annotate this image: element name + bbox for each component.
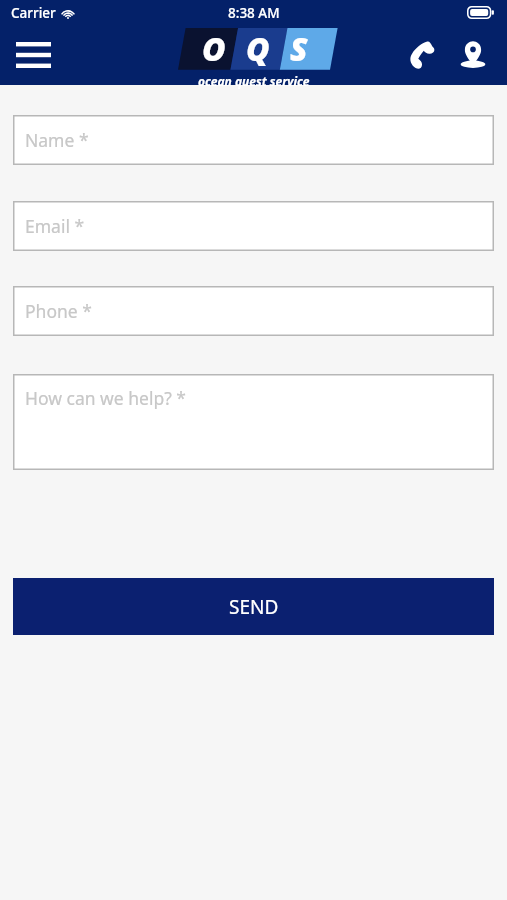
staticText: Carrier <box>11 4 56 22</box>
staticText: Q <box>246 27 270 71</box>
button[interactable]: Open navigation menu <box>6 30 60 80</box>
staticText: O <box>202 27 226 71</box>
button[interactable]: Phone * <box>13 286 494 336</box>
staticText: ocean quest service <box>198 73 310 89</box>
staticText: How can we help? * <box>25 386 187 410</box>
button[interactable]: Find location <box>448 30 498 80</box>
staticText: Email * <box>25 214 85 238</box>
staticText: Phone * <box>25 299 92 323</box>
button[interactable]: Call <box>398 30 448 80</box>
staticText: SEND <box>229 594 279 620</box>
button[interactable]: SEND <box>13 578 494 635</box>
button[interactable]: Name * <box>13 115 494 165</box>
staticText: S <box>290 27 308 71</box>
button[interactable]: Email * <box>13 201 494 251</box>
staticText: Name * <box>25 128 89 152</box>
staticText: 8:38 AM <box>228 4 280 22</box>
button[interactable]: How can we help? * <box>13 374 494 470</box>
